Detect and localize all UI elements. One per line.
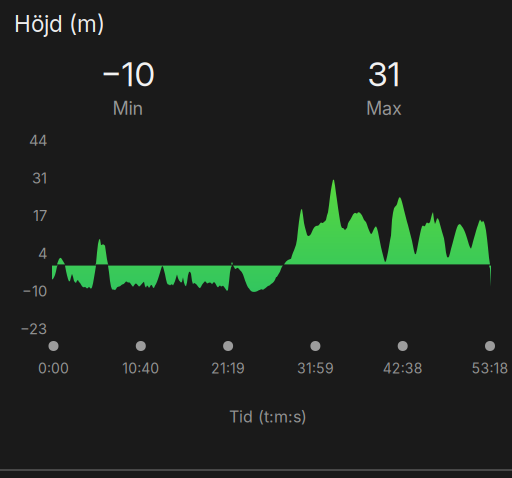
staticText: 4 xyxy=(38,245,47,262)
staticText: 31 xyxy=(367,54,400,94)
staticText: 53:18 xyxy=(471,360,508,377)
staticText: 31 xyxy=(32,169,47,187)
staticText: 42:38 xyxy=(383,360,423,377)
staticText: 10:40 xyxy=(122,360,159,377)
staticText: 31:59 xyxy=(297,360,334,377)
staticText: Tid (t:m:s) xyxy=(229,407,307,426)
staticText: 44 xyxy=(29,131,47,149)
staticText: Höjd (m) xyxy=(14,10,105,37)
staticText: 21:19 xyxy=(211,360,245,377)
staticText: −10 xyxy=(22,282,47,300)
staticText: −10 xyxy=(100,54,155,94)
staticText: Min xyxy=(112,97,143,119)
staticText: Max xyxy=(366,97,402,119)
staticText: −23 xyxy=(20,320,47,338)
staticText: 17 xyxy=(33,207,47,225)
staticText: 0:00 xyxy=(38,360,69,377)
